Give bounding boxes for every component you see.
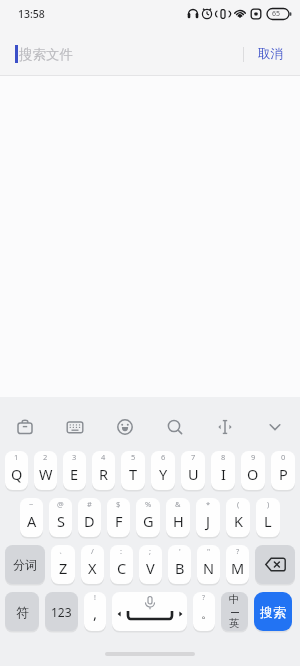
staticText: ? [236, 546, 240, 556]
button[interactable]: ' [168, 545, 191, 584]
staticText: Y [159, 464, 168, 484]
button[interactable]: / [81, 545, 104, 584]
staticText: 。 [201, 606, 213, 621]
staticText: 6 [161, 452, 166, 462]
button[interactable]: 4 [92, 451, 115, 490]
staticText: N [203, 558, 215, 578]
button[interactable] [0, 397, 50, 451]
staticText: U [188, 464, 199, 484]
button[interactable]: 、 [51, 545, 75, 584]
button[interactable]: 1 [5, 451, 28, 490]
staticText: W [39, 464, 53, 484]
staticText: 搜索文件 [19, 46, 73, 63]
button[interactable] [255, 545, 295, 584]
staticText: V [146, 558, 155, 578]
button[interactable]: % [136, 498, 160, 537]
staticText: 5 [131, 452, 136, 462]
staticText: 7 [191, 452, 196, 462]
staticText: 13:58 [18, 7, 45, 21]
button[interactable]: 符 [5, 592, 39, 631]
staticText: $ [116, 499, 121, 509]
staticText: ~ [29, 499, 34, 509]
button[interactable]: * [196, 498, 220, 537]
staticText: T [129, 464, 138, 484]
button[interactable] [200, 397, 250, 451]
staticText: 123 [51, 604, 72, 620]
staticText: 中 [229, 593, 240, 606]
button[interactable]: 2 [34, 451, 57, 490]
button[interactable] [100, 397, 150, 451]
button[interactable]: ( [226, 498, 250, 537]
staticText: P [279, 464, 288, 484]
button[interactable]: 搜索 [254, 592, 292, 631]
staticText: S [57, 511, 65, 531]
staticText: M [231, 558, 245, 578]
staticText: L [264, 511, 272, 531]
staticText: @ [57, 499, 64, 509]
staticText: # [87, 499, 92, 509]
button[interactable]: 0 [271, 451, 295, 490]
staticText: A [27, 511, 37, 531]
staticText: 、 [59, 546, 67, 555]
button[interactable]: 分词 [5, 545, 45, 584]
staticText: D [84, 511, 95, 531]
button[interactable]: 5 [121, 451, 145, 490]
staticText: H [173, 511, 184, 531]
staticText: 1 [14, 452, 19, 462]
staticText: 3 [72, 452, 77, 462]
staticText: 0 [281, 452, 286, 462]
button[interactable]: ! [84, 592, 106, 631]
button[interactable]: 8 [211, 451, 235, 490]
staticText: ' [179, 546, 181, 556]
button[interactable] [0, 30, 240, 76]
button[interactable]: 123 [45, 592, 78, 631]
button[interactable]: 9 [241, 451, 265, 490]
staticText: & [175, 499, 181, 509]
staticText: ) [267, 499, 270, 509]
button[interactable] [50, 397, 100, 451]
button[interactable]: $ [107, 498, 130, 537]
staticText: G [143, 511, 154, 531]
staticText: , [93, 603, 98, 623]
button[interactable]: ? [226, 545, 249, 584]
staticText: 4 [101, 452, 106, 462]
staticText: Z [59, 558, 68, 578]
staticText: 2 [43, 452, 48, 462]
staticText: 符 [16, 604, 29, 620]
staticText: ! [94, 593, 96, 603]
staticText: Q [11, 464, 23, 484]
staticText: E [70, 464, 79, 484]
button[interactable]: 取消 [248, 38, 292, 70]
button[interactable] [150, 397, 200, 451]
staticText: " [207, 546, 211, 556]
button[interactable]: & [166, 498, 190, 537]
staticText: C [117, 558, 127, 578]
button[interactable] [250, 397, 300, 451]
staticText: / [91, 546, 94, 556]
staticText: K [234, 511, 243, 531]
staticText: I [221, 464, 226, 484]
staticText: B [175, 558, 185, 578]
button[interactable]: " [197, 545, 220, 584]
staticText: 9 [251, 452, 256, 462]
staticText: 取消 [258, 46, 283, 62]
staticText: 8 [221, 452, 226, 462]
button[interactable]: # [78, 498, 101, 537]
button[interactable]: ; [139, 545, 162, 584]
button[interactable] [112, 592, 187, 631]
button[interactable]: 7 [181, 451, 205, 490]
button[interactable]: @ [49, 498, 72, 537]
button[interactable]: 3 [63, 451, 86, 490]
staticText: ; [149, 546, 152, 556]
staticText: J [206, 511, 210, 531]
button[interactable]: 中 [221, 592, 248, 631]
staticText: 65 [272, 9, 281, 19]
button[interactable]: 6 [151, 451, 175, 490]
staticText: 英 [229, 617, 240, 630]
staticText: * [206, 499, 211, 509]
button[interactable]: : [110, 545, 133, 584]
button[interactable]: ) [256, 498, 280, 537]
button[interactable]: ? [193, 592, 215, 631]
button[interactable]: ~ [20, 498, 43, 537]
staticText: ? [202, 593, 206, 603]
